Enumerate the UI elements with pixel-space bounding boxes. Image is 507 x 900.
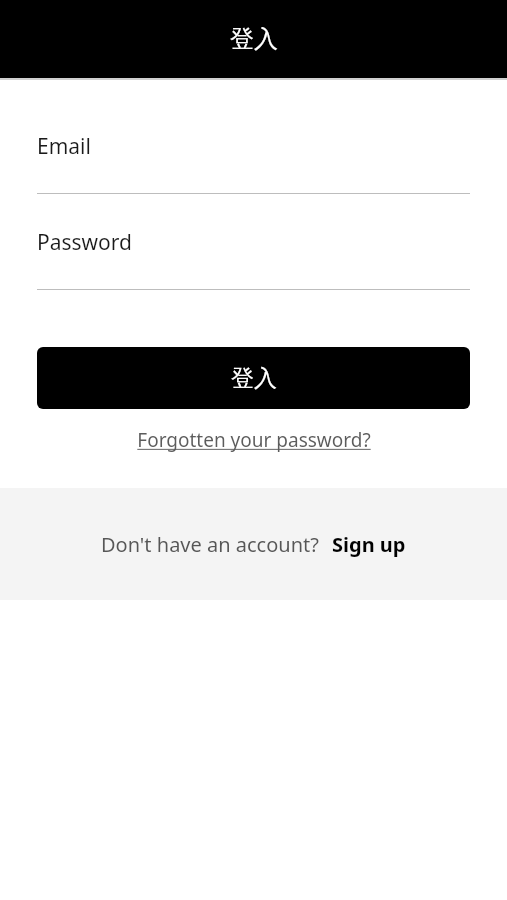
- staticText: 登入: [230, 24, 278, 54]
- staticText: Forgotten your password?: [137, 427, 371, 453]
- staticText: Don't have an account?: [101, 531, 319, 558]
- staticText: 登入: [231, 364, 277, 393]
- button[interactable]: Email: [37, 132, 470, 161]
- staticText: Sign up: [332, 531, 406, 558]
- staticText: Email: [37, 132, 91, 161]
- staticText: Password: [37, 228, 132, 257]
- button[interactable]: Password: [37, 228, 470, 257]
- button[interactable]: Forgotten your password?: [131, 421, 377, 459]
- button[interactable]: 登入: [37, 347, 470, 409]
- button[interactable]: Sign up: [332, 531, 406, 558]
